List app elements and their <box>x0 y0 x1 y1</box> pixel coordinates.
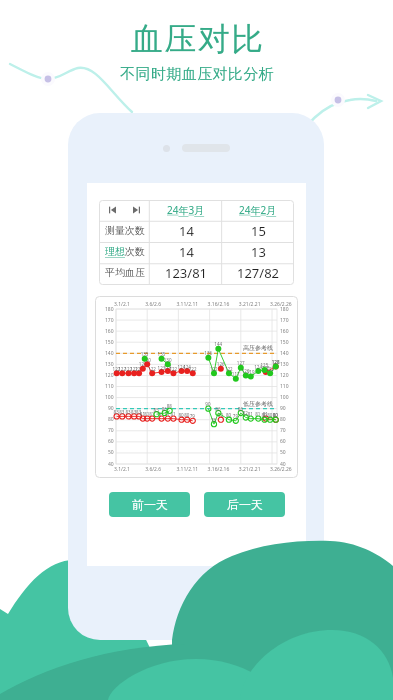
staticText: 次数 <box>125 245 145 258</box>
button[interactable]: 24年3月 <box>150 200 222 220</box>
staticText: 不同时期血压对比分析 <box>120 65 274 84</box>
staticText: 理想 <box>105 245 125 258</box>
staticText: 后一天 <box>227 497 263 512</box>
staticText: 13 <box>251 243 266 261</box>
staticText: 127/82 <box>237 264 280 282</box>
staticText: 血压对比 <box>130 19 264 59</box>
button[interactable]: 24年2月 <box>222 200 294 220</box>
staticText: 14 <box>179 243 194 261</box>
staticText: 24年2月 <box>239 203 277 217</box>
staticText: 14 <box>179 222 194 240</box>
button[interactable]: 后一天 <box>204 492 285 517</box>
staticText: 前一天 <box>132 497 168 512</box>
staticText: 24年3月 <box>167 203 205 217</box>
staticText: 平均血压 <box>105 266 145 279</box>
button[interactable]: 前一天 <box>109 492 190 517</box>
staticText: 15 <box>251 222 266 240</box>
staticText: 测量次数 <box>105 224 145 237</box>
button[interactable]: Previous and next month <box>109 206 140 214</box>
staticText: 123/81 <box>165 264 208 282</box>
